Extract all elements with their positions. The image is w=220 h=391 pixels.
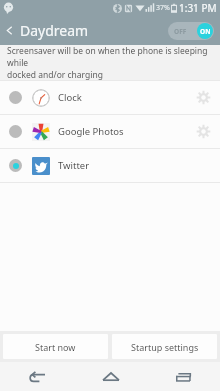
staticText: Twitter bbox=[58, 159, 90, 172]
button[interactable]: Startup settings bbox=[112, 334, 217, 359]
other: Back bbox=[4, 25, 15, 36]
button[interactable]: Daydream on/off bbox=[168, 22, 214, 40]
button[interactable]: Back bbox=[0, 21, 97, 40]
staticText: 1:31 PM bbox=[179, 1, 217, 15]
staticText: OFF bbox=[174, 27, 187, 36]
staticText: Clock bbox=[58, 91, 82, 104]
button[interactable]: Recents bbox=[147, 362, 220, 391]
button[interactable]: Back bbox=[0, 362, 74, 391]
staticText: 37% bbox=[156, 3, 170, 13]
button[interactable]: Clock bbox=[0, 81, 220, 114]
staticText: Start now bbox=[35, 341, 76, 353]
button[interactable]: Home bbox=[74, 362, 147, 391]
button[interactable]: Start now bbox=[3, 334, 108, 359]
staticText: Startup settings bbox=[131, 341, 199, 353]
button[interactable]: Settings for Google Photos bbox=[187, 115, 220, 148]
staticText: Screensaver will be on when the phone is… bbox=[7, 45, 214, 80]
button[interactable]: Settings for Clock bbox=[187, 81, 220, 114]
staticText: Google Photos bbox=[58, 125, 124, 138]
staticText: ON bbox=[200, 27, 211, 36]
staticText: Daydream bbox=[20, 21, 89, 40]
button[interactable]: Twitter bbox=[0, 149, 220, 182]
button[interactable]: Google Photos bbox=[0, 115, 220, 148]
